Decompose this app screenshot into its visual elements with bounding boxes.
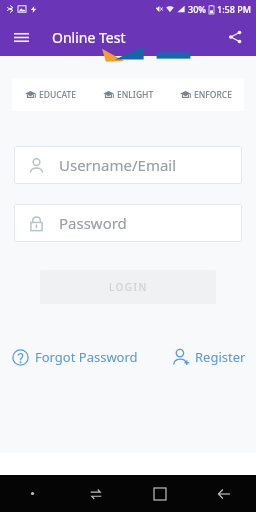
staticText: Password bbox=[59, 213, 127, 233]
button[interactable]: Share bbox=[222, 24, 248, 50]
staticText: ENLIGHT bbox=[117, 89, 154, 101]
staticText: ENFORCE bbox=[194, 89, 232, 101]
button[interactable]: ENLIGHT bbox=[90, 78, 167, 111]
button[interactable]: Assistant bbox=[0, 475, 64, 512]
button[interactable]: Forgot Password bbox=[8, 344, 142, 370]
staticText: 1:58 PM bbox=[217, 3, 251, 15]
staticText: Register bbox=[195, 348, 246, 366]
button[interactable]: Back bbox=[192, 475, 256, 512]
staticText: Username/Email bbox=[59, 155, 177, 175]
button[interactable]: LOGIN bbox=[40, 270, 216, 304]
button[interactable]: Recent apps bbox=[64, 475, 128, 512]
staticText: EDUCATE bbox=[39, 89, 77, 101]
staticText: LOGIN bbox=[109, 280, 148, 294]
button[interactable]: EDUCATE bbox=[12, 78, 90, 111]
button[interactable]: Register bbox=[168, 344, 250, 370]
button[interactable]: ENFORCE bbox=[167, 78, 244, 111]
staticText: Forgot Password bbox=[35, 348, 138, 366]
button[interactable]: Password bbox=[14, 204, 242, 242]
button[interactable]: Open navigation menu bbox=[8, 24, 34, 50]
staticText: 30% bbox=[188, 3, 206, 15]
staticText: Online Test bbox=[52, 28, 126, 47]
button[interactable]: Home bbox=[128, 475, 192, 512]
button[interactable]: Username/Email bbox=[14, 146, 242, 184]
